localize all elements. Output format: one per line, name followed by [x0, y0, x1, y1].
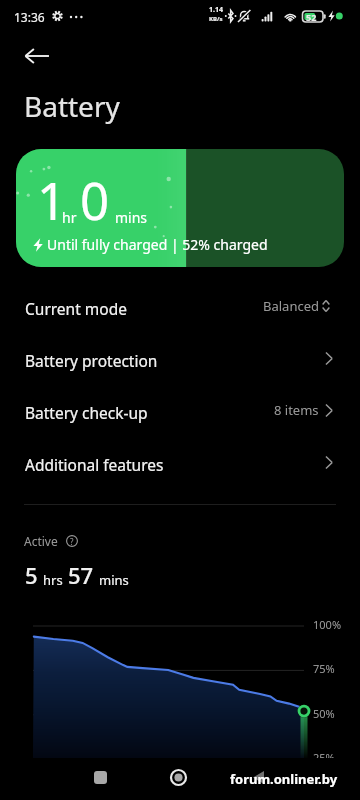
button[interactable]: Current mode — [0, 282, 360, 334]
staticText: hrs — [43, 571, 63, 589]
staticText: 50% — [313, 706, 335, 721]
staticText: 13:36 — [14, 9, 45, 25]
staticText: mins — [115, 208, 148, 227]
staticText: Battery — [24, 87, 120, 125]
button[interactable]: About active time — [64, 533, 80, 549]
staticText: 100% — [313, 617, 342, 632]
staticText: 57 — [68, 560, 94, 590]
button[interactable]: Back — [244, 763, 272, 791]
staticText: KB/s — [209, 15, 223, 23]
staticText: Until fully charged | 52% charged — [47, 235, 268, 254]
staticText: 0 — [80, 165, 110, 234]
staticText: Current mode — [25, 298, 127, 319]
button[interactable]: 1 — [16, 149, 344, 267]
staticText: 8 items — [274, 401, 319, 419]
button[interactable]: Home — [164, 763, 192, 791]
button[interactable]: Battery protection — [0, 334, 360, 386]
staticText: Balanced — [263, 297, 319, 315]
staticText: 75% — [313, 661, 335, 676]
staticText: mins — [99, 571, 129, 589]
staticText: 25% — [313, 750, 335, 758]
staticText: forum.onliner.by — [230, 770, 338, 788]
staticText: Additional features — [25, 454, 164, 475]
button[interactable]: Recent apps — [86, 763, 114, 791]
staticText: Active — [24, 533, 58, 549]
staticText: 1 — [37, 165, 67, 234]
staticText: 52 — [306, 11, 317, 23]
staticText: Battery protection — [25, 350, 158, 371]
staticText: Battery check-up — [25, 402, 148, 423]
staticText: 1.14 — [209, 5, 223, 15]
staticText: ? — [70, 536, 74, 547]
button[interactable]: Additional features — [0, 438, 360, 490]
staticText: hr — [62, 208, 77, 227]
button[interactable]: Battery check-up — [0, 386, 360, 438]
staticText: 5 — [25, 560, 38, 590]
button[interactable]: Back — [17, 36, 57, 76]
